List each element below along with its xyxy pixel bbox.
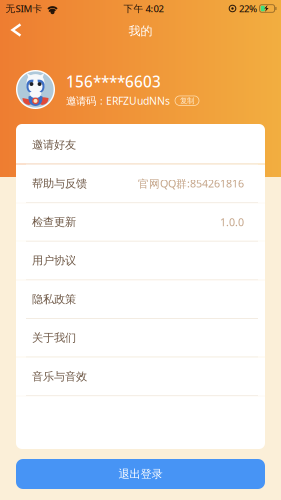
staticText: 复制 [180,96,194,105]
button[interactable]: Back [0,17,32,45]
staticText: 官网QQ群:854261816 [138,176,244,190]
button[interactable]: 用户协议 [16,242,265,279]
button[interactable]: 隐私政策 [16,280,265,318]
button[interactable]: 检查更新 [16,203,265,241]
button[interactable]: 退出登录 [16,459,265,489]
button[interactable]: 音乐与音效 [16,358,265,395]
staticText: 156****6603 [66,71,161,92]
staticText: 1.0.0 [220,215,244,229]
staticText: 帮助与反馈 [32,176,87,190]
staticText: 检查更新 [32,215,76,229]
staticText: 用户协议 [32,254,76,267]
staticText: 我的 [128,24,152,38]
button[interactable]: 复制 [175,96,199,105]
button[interactable]: 帮助与反馈 [16,165,265,202]
staticText: 邀请好友 [32,138,76,152]
staticText: 隐私政策 [32,292,76,306]
staticText: 邀请码：ERFZUudNNs [66,94,170,108]
button[interactable]: 邀请好友 [16,126,265,164]
staticText: 退出登录 [118,467,162,481]
button[interactable]: 关于我们 [16,319,265,357]
staticText: 22% [239,2,257,15]
staticText: 无SIM卡 [5,2,42,15]
staticText: 音乐与音效 [32,369,87,383]
staticText: 关于我们 [32,331,76,345]
staticText: 下午 4:02 [123,2,163,15]
